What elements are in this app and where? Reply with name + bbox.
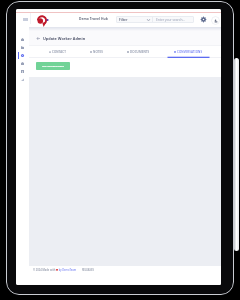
button[interactable]: Settings [199, 15, 207, 23]
staticText: Demo Travel Hub [79, 16, 108, 20]
button[interactable]: CONTACT [37, 46, 78, 58]
staticText: © 2024 Made with [33, 268, 56, 272]
button[interactable]: Menu [20, 14, 31, 25]
button[interactable]: Navigation item 6 [16, 75, 29, 83]
button[interactable]: Navigation item 4 [16, 59, 29, 67]
button[interactable]: Back [35, 35, 41, 41]
button[interactable]: Navigation item 3 [16, 51, 29, 59]
button[interactable]: Navigation item 2 [16, 43, 29, 51]
button[interactable]: NOTES [78, 46, 115, 58]
staticText: Filter [119, 18, 128, 22]
staticText: ADD CONVERSATION [42, 65, 64, 68]
button[interactable]: CONVERSATIONS [162, 46, 215, 58]
button[interactable]: Filter [116, 16, 152, 23]
button[interactable]: Account [211, 16, 220, 25]
staticText: by DemoTeam [58, 268, 77, 272]
button[interactable]: Navigation item 5 [16, 67, 29, 75]
staticText: CONTACT [52, 50, 66, 54]
staticText: DOCUMENTS [130, 50, 150, 54]
staticText: CONVERSATIONS [177, 50, 203, 54]
button[interactable]: ADD CONVERSATION [36, 62, 70, 70]
staticText: Enter your search... [156, 18, 185, 22]
button[interactable]: DOCUMENTS [115, 46, 162, 58]
staticText: Update Worker Admin [43, 36, 86, 41]
staticText: RELEASES [82, 268, 94, 272]
button[interactable]: Enter your search... [153, 16, 194, 23]
button[interactable]: Navigation item 1 [16, 35, 29, 43]
staticText: NOTES [93, 50, 103, 54]
